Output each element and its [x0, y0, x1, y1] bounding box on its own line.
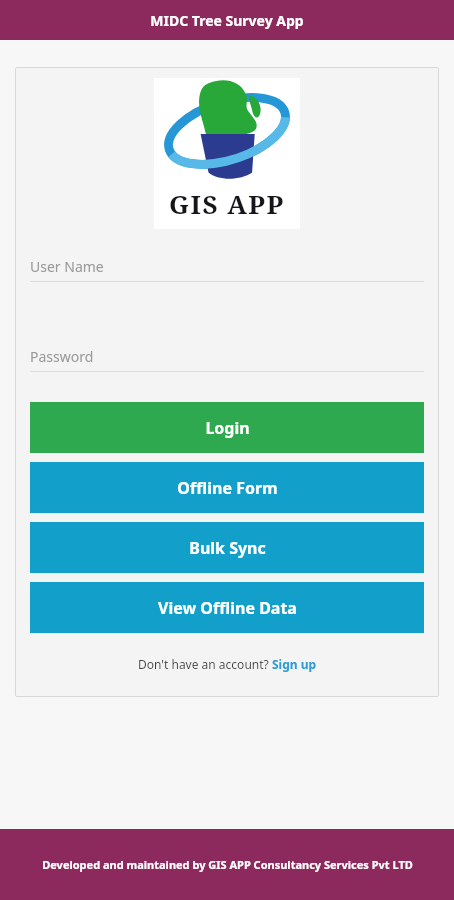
staticText: Sign up — [272, 656, 317, 672]
button[interactable]: Sign up — [272, 656, 317, 672]
button[interactable]: View Offline Data — [30, 582, 424, 633]
staticText: Developed and maintained by GIS APP Cons… — [42, 857, 413, 872]
staticText: MIDC Tree Survey App — [150, 11, 304, 30]
staticText: Offline Form — [177, 477, 278, 499]
staticText: User Name — [30, 257, 104, 276]
button[interactable]: User Name — [30, 251, 424, 282]
staticText: GIS APP — [169, 186, 285, 221]
button[interactable]: Bulk Sync — [30, 522, 424, 573]
staticText: Password — [30, 347, 94, 366]
button[interactable]: Offline Form — [30, 462, 424, 513]
staticText: View Offline Data — [158, 597, 297, 619]
staticText: Bulk Sync — [189, 537, 266, 559]
staticText: Login — [205, 417, 250, 439]
staticText: Don't have an account? — [138, 656, 272, 672]
button[interactable]: Login — [30, 402, 424, 453]
button[interactable]: Password — [30, 341, 424, 372]
